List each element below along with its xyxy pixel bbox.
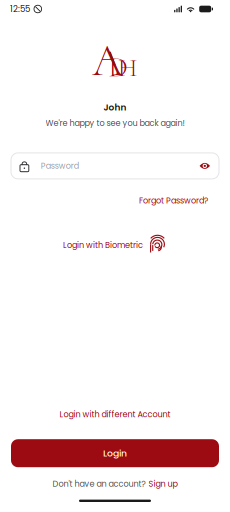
staticText: Password [41,160,79,172]
staticText: H [118,52,138,84]
button[interactable]: Sign up [148,478,177,490]
button[interactable]: Login with different Account [59,409,170,420]
staticText: A [92,34,123,88]
staticText: Login [103,447,127,460]
button[interactable]: Show password [200,162,210,169]
staticText: Don't have an account? [52,478,145,490]
staticText: Login with Biometric [63,240,143,251]
button[interactable]: Login with Biometric [63,234,167,256]
staticText: John [103,101,126,113]
staticText: 12:55 [10,3,30,15]
staticText: Forgot Password? [139,195,208,206]
staticText: We're happy to see you back again! [45,117,184,129]
button[interactable]: Forgot Password? [139,195,208,206]
staticText: D [108,50,127,84]
staticText: Login with different Account [59,409,170,420]
button[interactable]: Login [11,439,219,467]
staticText: Sign up [148,478,177,490]
